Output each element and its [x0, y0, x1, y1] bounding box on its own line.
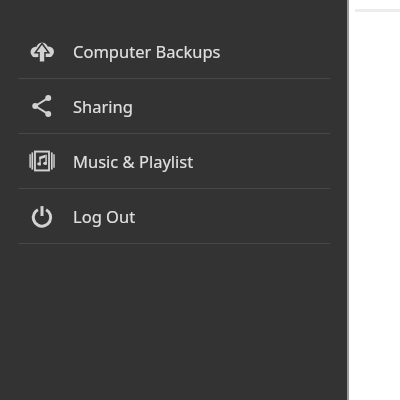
staticText: Sharing [73, 95, 133, 117]
staticText: Computer Backups [73, 40, 221, 62]
button[interactable]: Sharing [0, 79, 347, 133]
button[interactable]: Music & Playlist [0, 134, 347, 188]
button[interactable]: Log Out [0, 189, 347, 243]
other: Computer Backups [29, 38, 55, 64]
other: Sharing [29, 93, 55, 119]
other: Music & Playlist [29, 148, 55, 174]
other: Log Out [29, 203, 55, 229]
button[interactable]: Computer Backups [0, 24, 347, 78]
staticText: Music & Playlist [73, 150, 194, 172]
staticText: Log Out [73, 205, 136, 227]
